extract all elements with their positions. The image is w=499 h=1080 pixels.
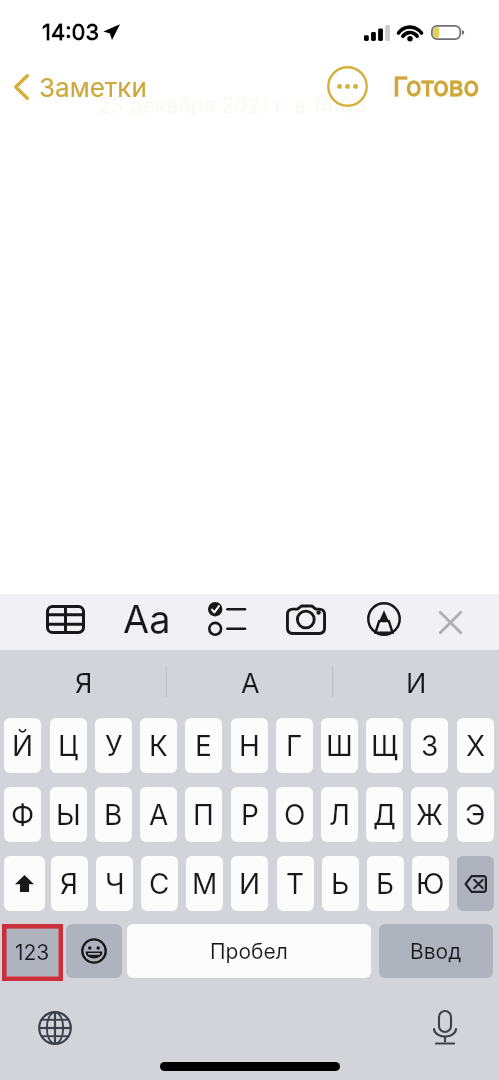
- button[interactable]: З: [411, 718, 448, 773]
- button[interactable]: С: [141, 856, 178, 911]
- staticText: Ь: [331, 867, 350, 901]
- button[interactable]: Hide keyboard: [424, 594, 476, 644]
- button[interactable]: В: [95, 787, 132, 842]
- staticText: Щ: [371, 729, 399, 763]
- staticText: М: [192, 867, 218, 901]
- staticText: Ы: [56, 798, 81, 832]
- button[interactable]: Checklist: [201, 594, 253, 644]
- staticText: Ш: [326, 729, 353, 763]
- button[interactable]: Заметки: [13, 68, 147, 106]
- staticText: Е: [195, 729, 212, 763]
- staticText: И: [239, 867, 261, 901]
- button[interactable]: Пробел: [127, 924, 371, 978]
- staticText: У: [105, 729, 123, 763]
- staticText: 14:03: [42, 19, 99, 46]
- button[interactable]: Ц: [50, 718, 87, 773]
- button[interactable]: 123: [6, 928, 58, 976]
- staticText: К: [149, 729, 168, 763]
- staticText: С: [149, 867, 170, 901]
- staticText: Б: [376, 867, 395, 901]
- button[interactable]: Backspace: [457, 856, 494, 911]
- button[interactable]: Shift: [4, 856, 45, 911]
- button[interactable]: Ю: [412, 856, 449, 911]
- button[interactable]: П: [185, 787, 222, 842]
- staticText: А: [241, 667, 260, 700]
- staticText: И: [406, 667, 427, 700]
- button[interactable]: А: [167, 650, 333, 717]
- staticText: Ц: [58, 729, 79, 763]
- staticText: Ввод: [410, 939, 462, 964]
- button[interactable]: Е: [185, 718, 222, 773]
- button[interactable]: Ь: [322, 856, 359, 911]
- button[interactable]: Ч: [96, 856, 133, 911]
- staticText: Aa: [123, 596, 171, 642]
- button[interactable]: О: [276, 787, 313, 842]
- staticText: Заметки: [39, 72, 147, 103]
- button[interactable]: Щ: [366, 718, 403, 773]
- button[interactable]: Emoji: [66, 924, 122, 978]
- button[interactable]: Text format: [121, 594, 173, 644]
- button[interactable]: Markup: [358, 594, 410, 644]
- staticText: Ж: [416, 798, 443, 832]
- button[interactable]: Ф: [4, 787, 41, 842]
- staticText: Р: [241, 798, 259, 832]
- staticText: Э: [465, 798, 486, 832]
- button[interactable]: Camera: [280, 594, 332, 644]
- button[interactable]: Dictation: [422, 1005, 467, 1050]
- staticText: Пробел: [210, 939, 288, 964]
- staticText: Й: [12, 729, 34, 763]
- staticText: Ч: [105, 867, 125, 901]
- staticText: О: [284, 798, 306, 832]
- button[interactable]: Я: [0, 650, 167, 717]
- button[interactable]: Ш: [321, 718, 358, 773]
- button[interactable]: Г: [276, 718, 313, 773]
- button[interactable]: Т: [277, 856, 314, 911]
- staticText: Я: [60, 867, 79, 901]
- staticText: Ф: [11, 798, 35, 832]
- button[interactable]: Б: [367, 856, 404, 911]
- button[interactable]: Ы: [50, 787, 87, 842]
- staticText: А: [149, 798, 169, 832]
- button[interactable]: Х: [457, 718, 494, 773]
- button[interactable]: Insert table: [39, 594, 91, 644]
- button[interactable]: Ввод: [379, 924, 493, 978]
- staticText: Г: [286, 729, 303, 763]
- button[interactable]: Э: [457, 787, 494, 842]
- button[interactable]: А: [140, 787, 177, 842]
- button[interactable]: И: [231, 856, 268, 911]
- button[interactable]: Готово: [393, 67, 480, 105]
- staticText: 123: [15, 940, 50, 965]
- button[interactable]: Я: [51, 856, 88, 911]
- staticText: Ю: [416, 867, 445, 901]
- button[interactable]: Й: [4, 718, 41, 773]
- staticText: Н: [239, 729, 260, 763]
- button[interactable]: Д: [366, 787, 403, 842]
- staticText: Готово: [393, 71, 480, 102]
- staticText: Д: [373, 798, 396, 832]
- button[interactable]: Л: [321, 787, 358, 842]
- staticText: В: [104, 798, 123, 832]
- staticText: 23 декабря 2021 г. в 14:03: [98, 93, 367, 118]
- button[interactable]: Р: [231, 787, 268, 842]
- staticText: Т: [286, 867, 305, 901]
- staticText: П: [193, 798, 214, 832]
- button[interactable]: More options: [327, 66, 368, 107]
- button[interactable]: К: [140, 718, 177, 773]
- button[interactable]: У: [95, 718, 132, 773]
- button[interactable]: М: [186, 856, 223, 911]
- staticText: З: [421, 729, 439, 763]
- button[interactable]: Ж: [411, 787, 448, 842]
- staticText: Л: [329, 798, 350, 832]
- staticText: Х: [466, 729, 486, 763]
- staticText: Я: [75, 667, 93, 700]
- button[interactable]: Change keyboard: [32, 1005, 77, 1050]
- button[interactable]: Н: [231, 718, 268, 773]
- button[interactable]: И: [333, 650, 499, 717]
